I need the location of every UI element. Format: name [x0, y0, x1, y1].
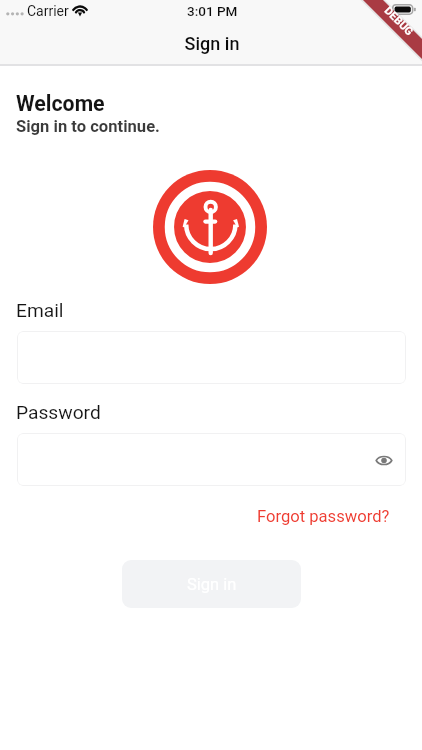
- staticText: Forgot password?: [257, 507, 390, 526]
- staticText: Password: [16, 401, 101, 424]
- staticText: Sign in: [1, 33, 422, 54]
- staticText: Sign in: [187, 575, 237, 594]
- button[interactable]: Show password: [17, 433, 406, 486]
- button[interactable]: Show password: [367, 443, 401, 477]
- button[interactable]: Forgot password?: [250, 503, 397, 530]
- staticText: Carrier: [27, 3, 69, 19]
- staticText: DEBUG: [382, 4, 416, 39]
- staticText: Email: [16, 299, 64, 322]
- staticText: Sign in to continue.: [16, 117, 160, 136]
- staticText: Welcome: [16, 91, 105, 116]
- staticText: 3:01 PM: [187, 3, 238, 19]
